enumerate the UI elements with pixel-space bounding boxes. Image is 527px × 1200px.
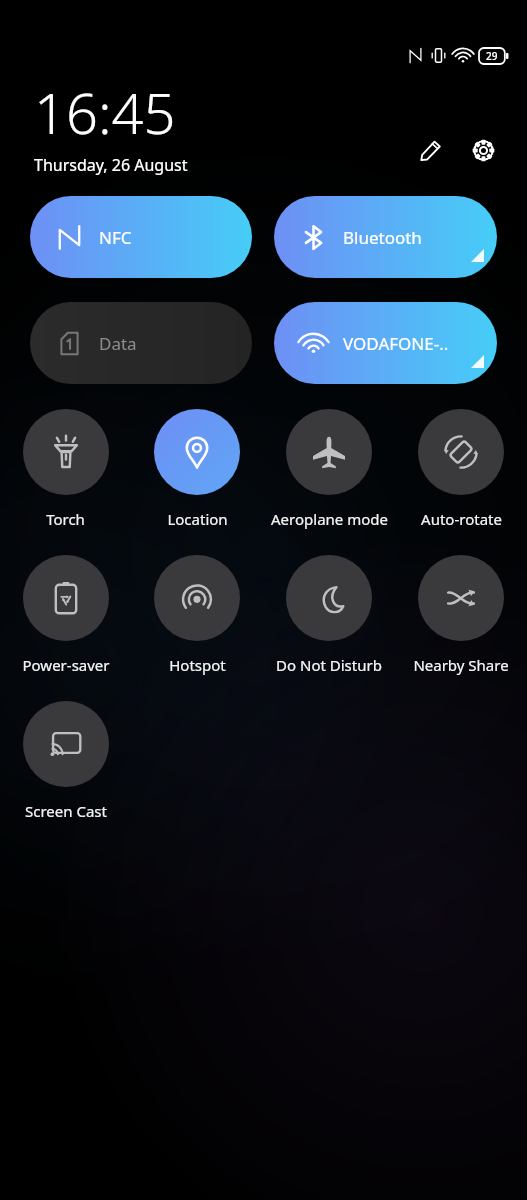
staticText: Do Not Disturb	[276, 655, 382, 675]
button[interactable]: Aeroplane mode	[263, 409, 395, 529]
button[interactable]: NFC	[30, 196, 252, 278]
button[interactable]: Do Not Disturb	[263, 555, 395, 675]
button[interactable]: Edit quick settings	[409, 128, 453, 172]
button[interactable]: Nearby Share	[395, 555, 527, 675]
button[interactable]: Data	[30, 302, 252, 384]
staticText: 16:45	[34, 74, 176, 150]
button[interactable]: Screen Cast	[0, 701, 131, 821]
staticText: Auto-rotate	[421, 509, 502, 529]
staticText: Hotspot	[169, 655, 226, 675]
staticText: Bluetooth	[343, 226, 422, 249]
button[interactable]: Power-saver	[0, 555, 131, 675]
staticText: Nearby Share	[413, 655, 509, 675]
button[interactable]: VODAFONE-..	[274, 302, 497, 384]
staticText: VODAFONE-..	[343, 332, 449, 355]
staticText: Aeroplane mode	[271, 509, 388, 529]
staticText: Data	[99, 332, 137, 355]
staticText: Thursday, 26 August	[34, 154, 188, 176]
button[interactable]: Bluetooth	[274, 196, 497, 278]
staticText: 29	[486, 49, 498, 63]
button[interactable]: Torch	[0, 409, 131, 529]
staticText: Location	[167, 509, 228, 529]
button[interactable]: Auto-rotate	[395, 409, 527, 529]
staticText: Screen Cast	[25, 801, 107, 821]
staticText: Torch	[46, 509, 85, 529]
staticText: NFC	[99, 226, 132, 249]
button[interactable]: Hotspot	[131, 555, 263, 675]
button[interactable]: Settings	[461, 128, 505, 172]
button[interactable]: Location	[131, 409, 263, 529]
staticText: Power-saver	[22, 655, 110, 675]
